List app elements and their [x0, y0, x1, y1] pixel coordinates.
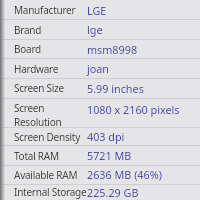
- button[interactable]: Board: [0, 39, 200, 59]
- staticText: lge: [87, 22, 103, 37]
- button[interactable]: Screen Density: [0, 127, 200, 146]
- button[interactable]: Screen Size: [0, 78, 200, 98]
- staticText: LGE: [87, 3, 107, 18]
- button[interactable]: Internal Storage: [0, 184, 200, 200]
- staticText: 1080 x 2160 pixels: [87, 102, 180, 117]
- staticText: Resolution: [14, 115, 62, 127]
- staticText: 5.99 inches: [87, 81, 144, 96]
- staticText: 2636 MB (46%): [87, 167, 162, 182]
- staticText: Hardware: [14, 62, 59, 76]
- staticText: Screen: [14, 101, 45, 115]
- button[interactable]: Screen: [0, 98, 200, 127]
- staticText: 403 dpi: [87, 129, 125, 144]
- staticText: Total RAM: [14, 149, 59, 163]
- staticText: Available RAM: [14, 168, 78, 182]
- staticText: msm8998: [87, 42, 138, 57]
- button[interactable]: Hardware: [0, 59, 200, 78]
- button[interactable]: Total RAM: [0, 146, 200, 165]
- staticText: Board: [14, 42, 41, 56]
- staticText: joan: [87, 61, 110, 76]
- staticText: 5721 MB: [87, 148, 132, 163]
- staticText: Brand: [14, 23, 42, 37]
- button[interactable]: Brand: [0, 20, 200, 39]
- staticText: Screen Density: [14, 130, 80, 144]
- staticText: Internal Storage: [14, 185, 87, 199]
- staticText: 225.29 GB: [87, 185, 139, 200]
- button[interactable]: Available RAM: [0, 165, 200, 184]
- staticText: Screen Size: [14, 81, 64, 95]
- staticText: Manufacturer: [14, 3, 76, 17]
- button[interactable]: Manufacturer: [0, 0, 200, 20]
